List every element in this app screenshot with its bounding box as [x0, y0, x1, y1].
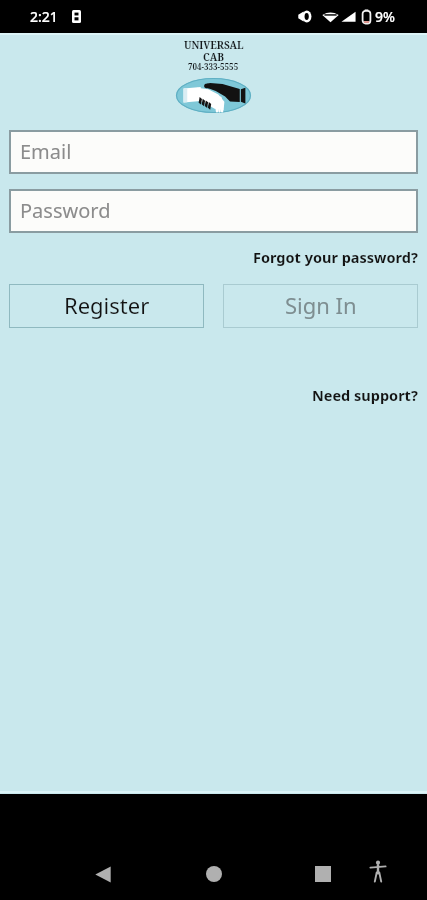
- button[interactable]: Forgot your password?: [253, 247, 418, 267]
- staticText: 704-333-5555: [188, 61, 239, 72]
- button[interactable]: Sign In: [223, 284, 418, 328]
- button[interactable]: Password: [9, 189, 418, 233]
- staticText: Email: [20, 138, 72, 165]
- staticText: Password: [20, 197, 111, 224]
- button[interactable]: Recent apps: [301, 852, 345, 896]
- button[interactable]: Back: [81, 852, 125, 896]
- staticText: 2:21: [30, 7, 58, 26]
- button[interactable]: Accessibility: [358, 851, 398, 891]
- staticText: 9%: [375, 7, 395, 26]
- button[interactable]: Need support?: [312, 385, 418, 405]
- staticText: Register: [64, 290, 150, 320]
- button[interactable]: Register: [9, 284, 204, 328]
- staticText: Sign In: [285, 290, 357, 320]
- button[interactable]: Email: [9, 130, 418, 174]
- staticText: CAB: [203, 50, 224, 64]
- staticText: UNIVERSAL: [184, 38, 244, 52]
- button[interactable]: Home: [192, 852, 236, 896]
